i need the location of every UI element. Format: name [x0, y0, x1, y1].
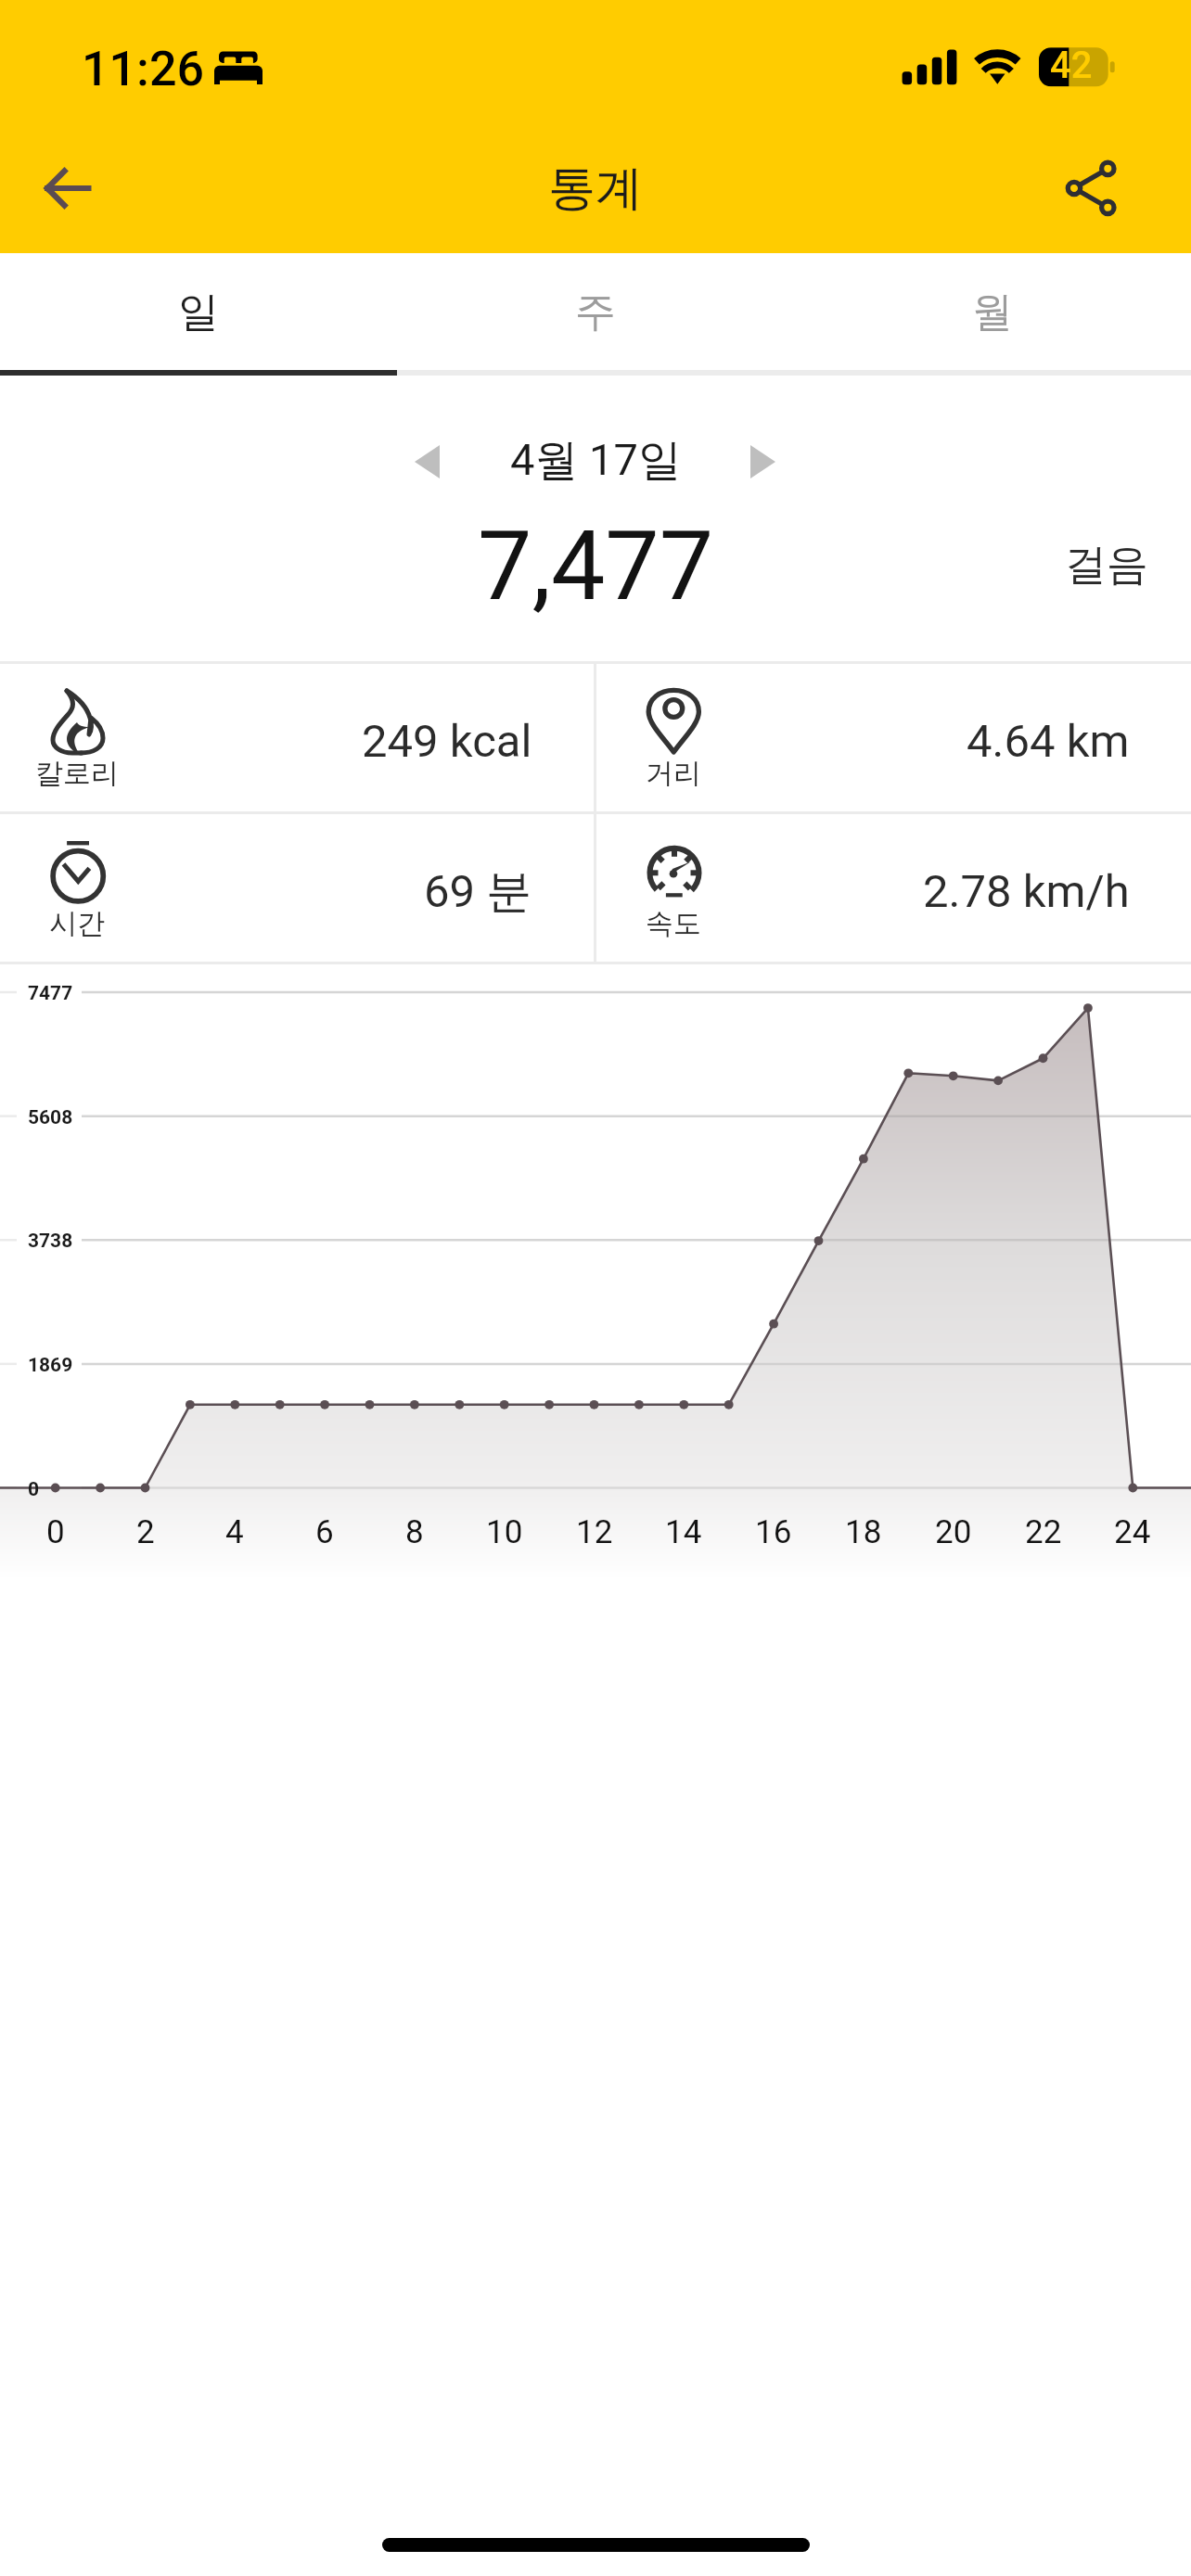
staticText: 주 [575, 287, 616, 338]
staticText: 4월 17일 [510, 433, 682, 488]
staticText: 24 [1114, 1513, 1151, 1551]
button[interactable]: 시간 [0, 814, 594, 962]
staticText: 6 [315, 1513, 334, 1551]
staticText: 0 [28, 1478, 40, 1501]
staticText: 8 [405, 1513, 424, 1551]
staticText: 7,477 [478, 510, 714, 623]
staticText: 22 [1025, 1513, 1062, 1551]
button[interactable]: Back [0, 123, 130, 253]
staticText: 18 [845, 1513, 882, 1551]
staticText: 시간 [49, 906, 105, 941]
staticText: 4.64 km [967, 715, 1130, 768]
button[interactable]: 일 [0, 253, 397, 370]
staticText: 2.78 km/h [923, 865, 1130, 918]
staticText: 일 [178, 287, 219, 338]
staticText: 걸음 [1065, 539, 1148, 592]
staticText: 11:26 [82, 41, 205, 97]
staticText: 7477 [28, 982, 73, 1005]
staticText: 월 [972, 287, 1013, 338]
staticText: 20 [935, 1513, 972, 1551]
button[interactable]: 칼로리 [0, 664, 594, 811]
staticText: 1869 [28, 1354, 73, 1377]
staticText: 4 [225, 1513, 244, 1551]
staticText: 속도 [646, 906, 701, 941]
staticText: 0 [46, 1513, 65, 1551]
staticText: 69 분 [424, 863, 532, 921]
button[interactable]: 월 [794, 253, 1191, 370]
button[interactable]: 속도 [596, 814, 1191, 962]
staticText: 10 [486, 1513, 523, 1551]
staticText: 칼로리 [35, 756, 119, 791]
staticText: 16 [755, 1513, 792, 1551]
staticText: 3738 [28, 1230, 73, 1253]
staticText: 5608 [28, 1106, 73, 1129]
staticText: 42 [1050, 44, 1093, 87]
staticText: 14 [665, 1513, 702, 1551]
button[interactable]: 주 [397, 253, 794, 370]
staticText: 거리 [646, 756, 701, 791]
button[interactable]: Next day [717, 415, 810, 508]
staticText: 통계 [548, 159, 643, 218]
button[interactable]: 거리 [596, 664, 1191, 811]
button[interactable]: Share [1061, 123, 1191, 253]
staticText: 249 kcal [362, 715, 532, 768]
staticText: 12 [576, 1513, 613, 1551]
staticText: 2 [136, 1513, 155, 1551]
button[interactable]: Previous day [381, 415, 474, 508]
